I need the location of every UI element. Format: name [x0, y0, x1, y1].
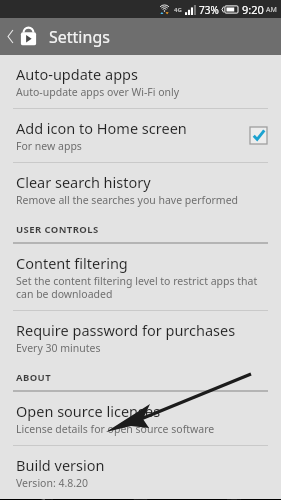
- staticText: 73%: [199, 3, 219, 17]
- button[interactable]: Auto-update apps: [0, 55, 281, 108]
- button[interactable]: Content filtering: [0, 244, 281, 310]
- staticText: Build version: [16, 455, 105, 475]
- button[interactable]: Navigate up, Settings: [0, 18, 281, 55]
- staticText: License details for open source software: [16, 422, 215, 436]
- staticText: Version: 4.8.20: [16, 476, 89, 490]
- staticText: 9:20: [242, 2, 264, 17]
- staticText: Require password for purchases: [16, 320, 236, 340]
- staticText: Every 30 minutes: [16, 341, 101, 355]
- staticText: ABOUT: [16, 371, 52, 384]
- button[interactable]: Recent apps: [187, 499, 281, 500]
- staticText: Auto-update apps: [16, 64, 138, 84]
- staticText: For new apps: [16, 139, 82, 153]
- button[interactable]: Home: [93, 499, 187, 500]
- button[interactable]: Build version: [0, 446, 281, 499]
- staticText: Auto-update apps over Wi-Fi only: [16, 85, 180, 99]
- button[interactable]: Require password for purchases: [0, 311, 281, 364]
- staticText: Set the content filtering level to restr…: [16, 274, 258, 301]
- staticText: USER CONTROLS: [16, 223, 99, 236]
- staticText: Add icon to Home screen: [16, 118, 187, 138]
- staticText: 4G: [174, 6, 182, 14]
- staticText: Content filtering: [16, 253, 128, 273]
- button[interactable]: Clear search history: [0, 163, 281, 216]
- staticText: Settings: [49, 26, 110, 48]
- staticText: AM: [266, 5, 277, 15]
- button[interactable]: Add icon to Home screen: [0, 109, 281, 162]
- staticText: Clear search history: [16, 172, 151, 192]
- staticText: Open source licenses: [16, 401, 161, 421]
- button[interactable]: Open source licenses: [0, 392, 281, 445]
- button[interactable]: Back: [0, 499, 93, 500]
- staticText: Remove all the searches you have perform…: [16, 193, 239, 207]
